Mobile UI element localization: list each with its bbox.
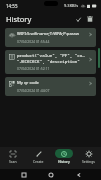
staticText: 07/04/2024 01:44:07 (17, 88, 50, 93)
staticText: Settings (82, 159, 95, 164)
staticText: product("value", "PF", "code" (17, 53, 87, 59)
button[interactable]: Back (74, 170, 83, 179)
button[interactable]: Home (46, 170, 55, 179)
button[interactable]: My qr code (5, 77, 96, 96)
button[interactable]: Scan (0, 147, 26, 169)
staticText: Create (33, 159, 44, 164)
staticText: 07/04/2024 01:52:11 (17, 66, 50, 71)
staticText: WIFI:S:wifiname;T:WPA;P:passw (17, 31, 80, 37)
staticText: History (58, 159, 70, 164)
button[interactable]: product("value", "PF", "code" (5, 50, 96, 74)
staticText: 9.3KB/s (64, 3, 79, 8)
button[interactable]: Settings (76, 147, 101, 169)
button[interactable]: Select all (73, 14, 83, 24)
staticText: Scan (9, 159, 17, 164)
staticText: 07/04/2024 01:55:44 (17, 39, 50, 44)
button[interactable]: WIFI:S:wifiname;T:WPA;P:passw (5, 28, 96, 47)
staticText: 14:55 (6, 3, 18, 9)
staticText: History (6, 14, 32, 24)
button[interactable]: Recent apps (19, 170, 28, 179)
button[interactable]: History (51, 147, 76, 169)
button[interactable]: Delete (85, 14, 95, 24)
button[interactable]: Create (26, 147, 51, 169)
staticText: My qr code (17, 80, 39, 86)
staticText: "JKCKCKCK", "description" (17, 59, 80, 65)
